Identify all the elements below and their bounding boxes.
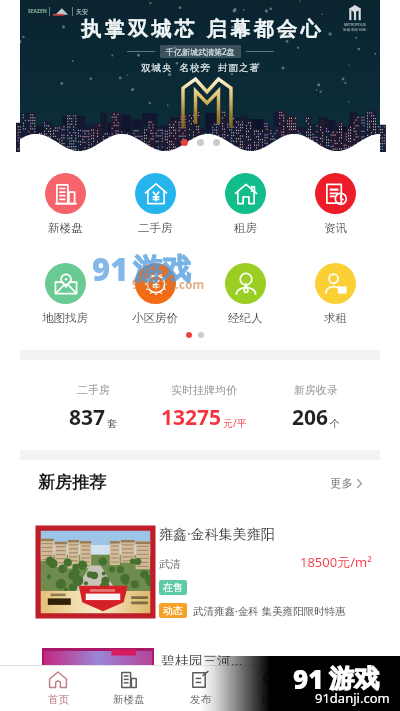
staticText: 二手房 [77,383,110,397]
staticText: 91 [92,248,129,290]
staticText: 个 [330,417,340,430]
staticText: 18500元/m² [300,553,372,571]
staticText: 套 [107,417,117,430]
staticText: 双城央 名校旁 封面之著 [141,61,260,74]
staticText: 租房 [234,221,257,235]
staticText: 雍鑫·金科集美雍阳 [159,524,275,543]
button[interactable]: 求租 [299,263,371,325]
button[interactable]: 雍鑫·金科集美雍阳 [0,522,400,622]
button[interactable]: 地图找房 [29,263,101,325]
button[interactable]: SEAZEN [20,0,380,152]
staticText: 首页 [48,693,69,706]
staticText: 武清雍鑫·金科 集美雍阳限时特惠 [193,604,346,618]
staticText: 91 [293,661,324,696]
staticText: 游戏 [329,663,379,694]
staticText: 206 [292,403,329,432]
staticText: 天安 [76,8,88,16]
button[interactable]: 二手房 [69,383,117,432]
staticText: 找房 [261,693,282,706]
staticText: 经纪人 [228,311,263,325]
button[interactable]: 更多 [330,476,362,490]
staticText: 动态 [163,604,183,617]
button[interactable]: 新楼盘 [96,670,162,706]
staticText: 新楼盘 [48,221,83,235]
staticText: 武清 [159,557,181,571]
staticText: 91danji.com [132,276,205,292]
staticText: 地图找房 [42,311,88,325]
staticText: 我的 [332,693,353,706]
staticText: SEAZEN [28,8,47,15]
staticText: METROPOLIS [344,22,366,27]
button[interactable]: 首页 [25,670,91,706]
staticText: 更多 [330,476,353,490]
staticText: 求租 [324,311,347,325]
staticText: 执掌双城芯 启幕都会心 [81,15,324,42]
staticText: 实时挂牌均价 [171,383,237,397]
button[interactable]: 新房收录 [292,383,340,432]
staticText: 新房推荐 [38,472,106,493]
staticText: 新城·和嘉·招商 [343,27,366,32]
staticText: 13275 [161,403,222,432]
button[interactable]: 实时挂牌均价 [161,383,247,432]
staticText: 发布 [190,693,211,706]
staticText: 二手房 [138,221,173,235]
button[interactable]: 发布 [167,670,233,706]
staticText: 碧桂园三河... [161,651,243,670]
button[interactable]: 二手房 [119,173,191,235]
button[interactable]: 我的 [309,670,375,706]
button[interactable]: 找房 [238,670,304,706]
staticText: 小区房价 [132,311,178,325]
button[interactable]: 小区房价 [119,263,191,325]
staticText: 91danji.com [315,689,390,707]
staticText: 新楼盘 [113,693,145,706]
button[interactable]: 经纪人 [209,263,281,325]
button[interactable]: 资讯 [299,173,371,235]
staticText: 新房收录 [294,383,338,397]
staticText: 资讯 [324,221,347,235]
button[interactable]: 新楼盘 [29,173,101,235]
staticText: 在售 [163,581,183,594]
staticText: 837 [69,403,106,432]
staticText: 千亿新城武清第2盘 [166,46,235,57]
staticText: 元/平 [223,416,247,430]
button[interactable]: 租房 [209,173,281,235]
button[interactable]: 碧桂园三河... [0,646,400,670]
staticText: 游戏 [133,251,191,288]
